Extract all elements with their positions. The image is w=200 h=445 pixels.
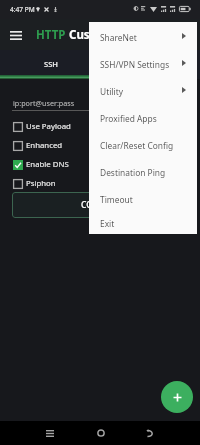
staticText: SSH <box>44 59 59 69</box>
staticText: Use Payload <box>26 121 71 132</box>
staticText: HTTP <box>36 27 69 43</box>
staticText: Exit <box>100 218 115 229</box>
button[interactable]: ShareNet <box>89 24 197 51</box>
button[interactable]: Exit <box>89 213 197 234</box>
staticText: SSH/VPN Settings <box>100 59 170 70</box>
staticText: ShareNet <box>100 32 137 43</box>
staticText: Proxified Apps <box>100 113 157 124</box>
staticText: Enable DNS <box>26 159 69 170</box>
staticText: 4:47 PM <box>10 5 35 14</box>
button[interactable]: Enable DNS <box>13 155 69 174</box>
button[interactable]: Destination Ping <box>89 159 197 186</box>
staticText: Custom <box>69 27 114 43</box>
staticText: Utility <box>100 86 123 97</box>
button[interactable]: Add configuration <box>161 381 193 413</box>
staticText: Enhanced <box>26 140 63 151</box>
staticText: Timeout <box>100 194 133 205</box>
button[interactable]: Proxified Apps <box>89 105 197 132</box>
button[interactable]: Enhanced <box>13 136 63 155</box>
button[interactable]: Timeout <box>89 186 197 213</box>
button[interactable]: CONNECT <box>12 192 189 218</box>
button[interactable]: Utility <box>89 78 197 105</box>
button[interactable]: Use Payload <box>13 117 71 136</box>
button[interactable]: Back <box>136 421 164 445</box>
button[interactable]: Clear/Reset Config <box>89 132 197 159</box>
button[interactable]: Home <box>87 421 115 445</box>
staticText: Destination Ping <box>100 167 166 178</box>
staticText: ip:port@user:pass <box>13 98 75 108</box>
staticText: Clear/Reset Config <box>100 140 174 151</box>
button[interactable]: Recents <box>36 421 64 445</box>
button[interactable]: SSH/VPN Settings <box>89 51 197 78</box>
button[interactable]: Open navigation drawer <box>5 25 26 46</box>
staticText: Psiphon <box>26 178 56 189</box>
button[interactable]: Psiphon <box>13 174 56 193</box>
staticText: CONNECT <box>81 199 121 211</box>
